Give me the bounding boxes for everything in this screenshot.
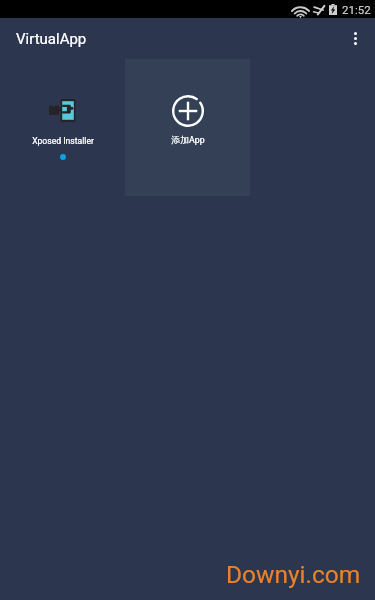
button[interactable]: 添加App [125,59,250,196]
button[interactable]: More options [333,18,375,59]
staticText: VirtualApp [16,30,87,48]
button[interactable]: Xposed Installer [0,59,125,196]
staticText: Downyi.com [226,560,361,589]
staticText: Xposed Installer [32,136,94,146]
staticText: 21:52 [342,3,371,16]
staticText: 添加App [171,135,205,146]
